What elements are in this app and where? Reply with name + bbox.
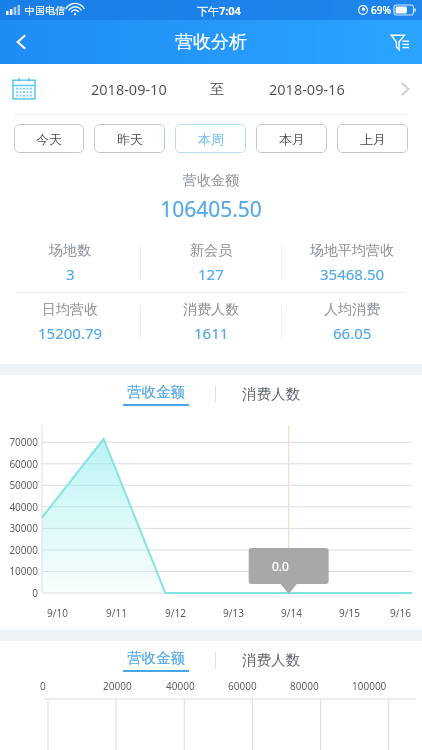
staticText: 127 (198, 264, 224, 284)
staticText: 中国电信 (25, 4, 65, 17)
staticText: 消费人数 (242, 385, 300, 403)
staticText: 昨天 (117, 131, 143, 147)
button[interactable]: 上月 (337, 124, 408, 153)
staticText: 9/11 (106, 606, 127, 620)
button[interactable]: 日均营收 (0, 293, 140, 351)
staticText: 100000 (352, 679, 387, 693)
staticText: 2018-09-10 (91, 79, 167, 99)
button[interactable]: 消费人数 (141, 293, 281, 351)
staticText: 50000 (0, 478, 38, 492)
button[interactable]: 本周 (175, 124, 246, 153)
button[interactable]: 消费人数 (230, 381, 312, 407)
button[interactable]: 营收金额 (111, 383, 201, 406)
staticText: 70000 (0, 435, 38, 449)
staticText: 消费人数 (183, 301, 239, 319)
staticText: 人均消费 (324, 301, 380, 319)
staticText: 60000 (228, 679, 257, 693)
staticText: 20000 (0, 543, 38, 557)
staticText: 下午7:04 (197, 3, 241, 18)
staticText: 1611 (194, 323, 229, 343)
staticText: 20000 (103, 679, 132, 693)
button[interactable]: 新会员 (141, 234, 281, 292)
staticText: 3 (66, 264, 75, 284)
staticText: 上月 (360, 131, 386, 147)
staticText: 9/12 (165, 606, 186, 620)
button[interactable]: 消费人数 (230, 647, 312, 673)
staticText: 40000 (0, 500, 38, 514)
staticText: 消费人数 (242, 651, 300, 669)
staticText: 营收金额 (127, 649, 185, 667)
staticText: 营收金额 (0, 172, 422, 190)
staticText: 9/15 (339, 606, 360, 620)
staticText: 80000 (290, 679, 319, 693)
staticText: 40000 (166, 679, 195, 693)
staticText: 0.0 (272, 558, 289, 574)
button[interactable]: 昨天 (94, 124, 165, 153)
staticText: 10000 (0, 564, 38, 578)
staticText: 0 (40, 679, 46, 693)
staticText: 9/10 (47, 606, 68, 620)
staticText: 15200.79 (38, 323, 103, 343)
staticText: 106405.50 (0, 195, 422, 224)
staticText: 新会员 (190, 242, 232, 260)
staticText: 9/14 (281, 606, 302, 620)
staticText: 本周 (198, 131, 224, 147)
staticText: 营收金额 (127, 383, 185, 401)
staticText: 9/16 (390, 606, 411, 620)
staticText: 至 (210, 80, 225, 98)
staticText: 35468.50 (320, 264, 385, 284)
button[interactable]: 人均消费 (282, 293, 422, 351)
staticText: 营收分析 (175, 31, 247, 54)
button[interactable]: Back (0, 20, 44, 64)
staticText: 0 (0, 586, 38, 600)
staticText: 69% (371, 3, 391, 17)
button[interactable]: Filter (378, 20, 422, 64)
staticText: 2018-09-16 (269, 79, 345, 99)
staticText: 今天 (36, 131, 62, 147)
button[interactable]: 2018-09-10 (48, 64, 210, 114)
staticText: 本月 (279, 131, 305, 147)
staticText: 66.05 (333, 323, 372, 343)
button[interactable]: 2018-09-16 (225, 64, 388, 114)
button[interactable]: 营收金额 (111, 649, 201, 672)
button[interactable]: 场地平均营收 (282, 234, 422, 292)
staticText: 场地数 (49, 242, 91, 260)
button[interactable]: 本月 (256, 124, 327, 153)
button[interactable]: Calendar (0, 64, 48, 114)
button[interactable]: 今天 (14, 124, 84, 153)
staticText: 场地平均营收 (310, 242, 394, 260)
button[interactable]: Next period (388, 64, 422, 114)
staticText: 日均营收 (42, 301, 98, 319)
staticText: 9/13 (223, 606, 244, 620)
staticText: 30000 (0, 521, 38, 535)
staticText: 60000 (0, 457, 38, 471)
button[interactable]: 场地数 (0, 234, 140, 292)
